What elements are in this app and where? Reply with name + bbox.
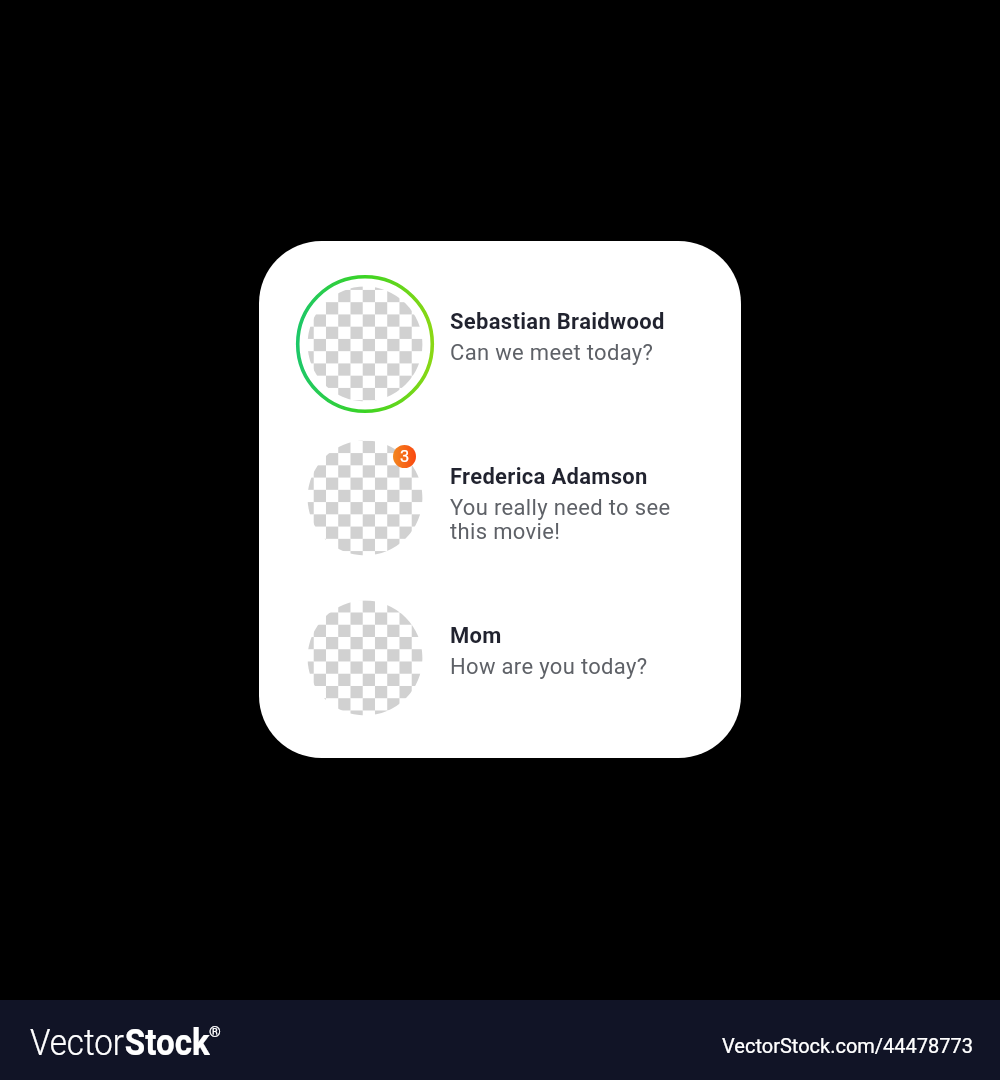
button[interactable]: VectorStock.com/44478773 xyxy=(722,1034,974,1057)
button[interactable]: Sebastian Braidwood avatar xyxy=(259,266,741,422)
other: Sebastian Braidwood avatar xyxy=(293,272,437,416)
staticText: 3 xyxy=(400,447,410,466)
staticText: Mom xyxy=(450,623,502,649)
staticText: Stock xyxy=(125,1021,210,1064)
staticText: ® xyxy=(209,1023,221,1041)
button[interactable]: Vector xyxy=(30,1021,210,1064)
staticText: Sebastian Braidwood xyxy=(450,309,665,335)
button[interactable]: Frederica Adamson avatar xyxy=(259,420,741,576)
button[interactable]: 3 unread messages xyxy=(393,445,416,468)
other: Frederica Adamson avatar xyxy=(293,426,437,570)
staticText: You really need to see this movie! xyxy=(450,495,671,544)
button[interactable]: Mom avatar xyxy=(259,580,741,736)
staticText: Frederica Adamson xyxy=(450,464,648,490)
staticText: Vector xyxy=(30,1021,125,1064)
staticText: How are you today? xyxy=(450,654,648,680)
staticText: Can we meet today? xyxy=(450,340,654,366)
other: Mom avatar xyxy=(293,586,437,730)
